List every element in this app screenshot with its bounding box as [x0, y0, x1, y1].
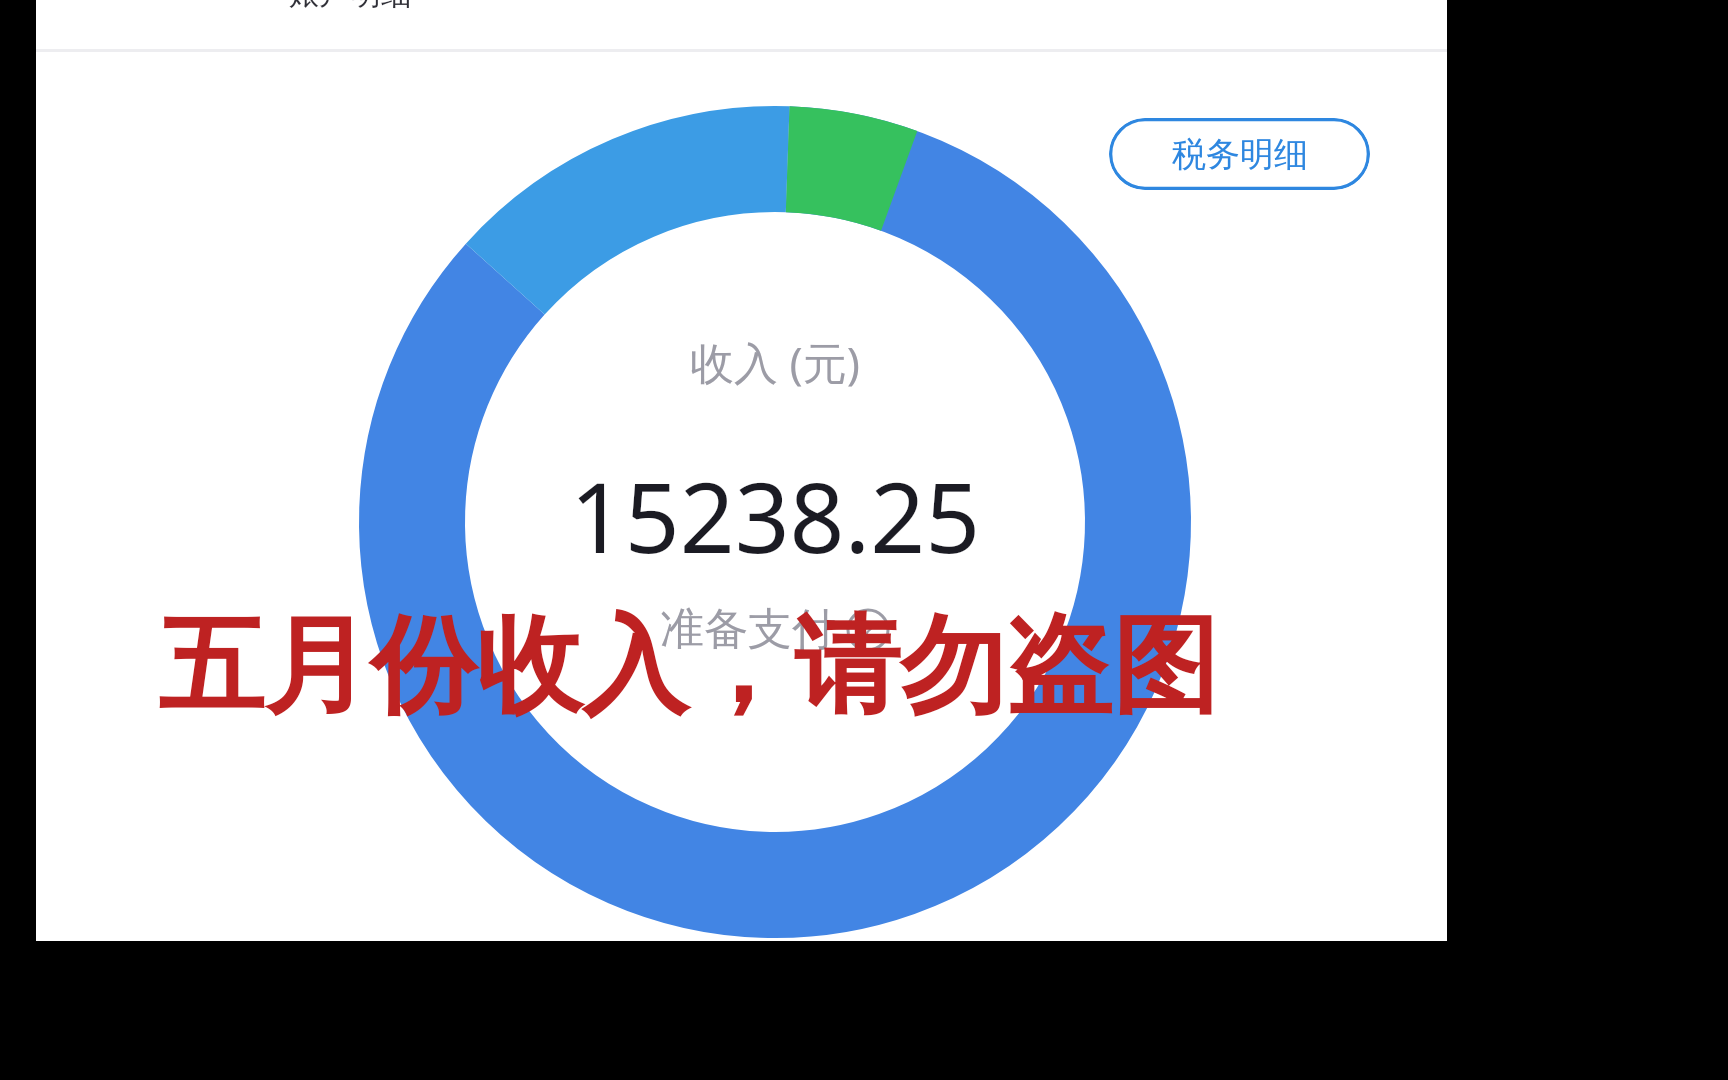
- staticText: 准备支付: [660, 602, 836, 657]
- button[interactable]: 税务明细: [1109, 118, 1370, 190]
- staticText: 账户明细: [288, 0, 412, 13]
- button[interactable]: 帮助: [846, 608, 890, 652]
- staticText: 15238.25: [475, 450, 1075, 581]
- staticText: ?: [862, 611, 875, 649]
- staticText: 五月份收入，请勿盗图: [158, 600, 1218, 734]
- staticText: 收入 (元): [475, 332, 1075, 392]
- staticText: 税务明细: [1172, 133, 1308, 176]
